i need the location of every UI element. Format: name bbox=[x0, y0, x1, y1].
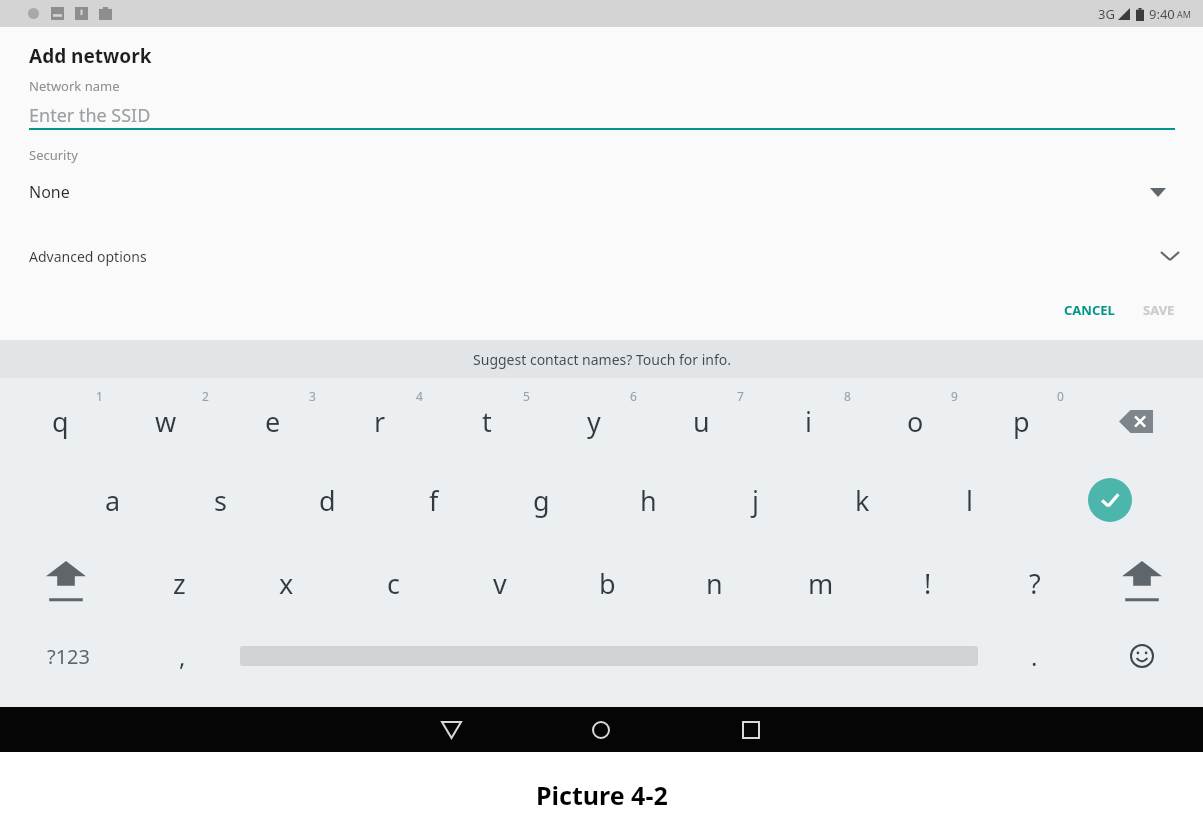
button[interactable]: Back bbox=[421, 707, 481, 752]
button[interactable]: SAVE bbox=[1129, 293, 1189, 327]
staticText: ! bbox=[924, 565, 932, 602]
button[interactable]: Emoji bbox=[1094, 624, 1190, 688]
staticText: None bbox=[29, 181, 70, 203]
staticText: ?123 bbox=[47, 643, 90, 670]
button[interactable]: s bbox=[172, 464, 268, 536]
staticText: k bbox=[855, 482, 870, 519]
staticText: ? bbox=[1029, 565, 1041, 602]
button[interactable]: c bbox=[345, 546, 441, 620]
button[interactable]: v bbox=[452, 546, 548, 620]
button[interactable]: z bbox=[131, 546, 227, 620]
button[interactable]: Recent apps bbox=[721, 707, 781, 752]
button[interactable]: Enter bbox=[1062, 464, 1158, 536]
button[interactable]: Backspace bbox=[1088, 384, 1184, 458]
staticText: Network name bbox=[29, 77, 120, 95]
staticText: 9 bbox=[951, 388, 958, 404]
staticText: j bbox=[752, 482, 759, 519]
staticText: Enter the SSID bbox=[29, 103, 151, 128]
button[interactable]: u bbox=[653, 384, 749, 458]
staticText: l bbox=[966, 482, 973, 519]
button[interactable]: CANCEL bbox=[1050, 293, 1129, 327]
staticText: r bbox=[374, 403, 386, 440]
staticText: Suggest contact names? Touch for info. bbox=[473, 350, 731, 369]
staticText: Security bbox=[29, 146, 78, 164]
button[interactable]: p bbox=[973, 384, 1069, 458]
staticText: e bbox=[265, 403, 281, 440]
staticText: u bbox=[693, 403, 710, 440]
button[interactable]: h bbox=[600, 464, 696, 536]
button[interactable]: o bbox=[867, 384, 963, 458]
staticText: i bbox=[805, 403, 812, 440]
staticText: n bbox=[706, 565, 723, 602]
button[interactable]: f bbox=[386, 464, 482, 536]
staticText: 8 bbox=[844, 388, 851, 404]
staticText: 6 bbox=[630, 388, 637, 404]
staticText: t bbox=[482, 403, 492, 440]
button[interactable]: k bbox=[814, 464, 910, 536]
staticText: 4 bbox=[416, 388, 423, 404]
staticText: 1 bbox=[96, 388, 103, 404]
button[interactable]: ?123 bbox=[20, 624, 116, 688]
button[interactable]: a bbox=[65, 464, 161, 536]
staticText: 2 bbox=[202, 388, 209, 404]
staticText: 5 bbox=[523, 388, 530, 404]
button[interactable]: b bbox=[559, 546, 655, 620]
staticText: 3G bbox=[1098, 5, 1115, 23]
button[interactable]: . bbox=[986, 624, 1082, 688]
staticText: o bbox=[907, 403, 924, 440]
staticText: AM bbox=[1177, 8, 1191, 20]
staticText: c bbox=[387, 565, 400, 602]
button[interactable]: y bbox=[546, 384, 642, 458]
staticText: s bbox=[214, 482, 227, 519]
button[interactable]: , bbox=[134, 624, 230, 688]
staticText: Add network bbox=[29, 43, 152, 69]
button[interactable]: ! bbox=[880, 546, 976, 620]
button[interactable]: j bbox=[707, 464, 803, 536]
staticText: f bbox=[429, 482, 439, 519]
button[interactable]: None bbox=[0, 171, 1203, 213]
button[interactable]: q bbox=[12, 384, 108, 458]
staticText: . bbox=[1031, 640, 1038, 673]
staticText: q bbox=[52, 403, 69, 440]
button[interactable]: l bbox=[921, 464, 1017, 536]
staticText: h bbox=[640, 482, 657, 519]
button[interactable]: e bbox=[225, 384, 321, 458]
staticText: SAVE bbox=[1143, 301, 1175, 319]
staticText: d bbox=[319, 482, 336, 519]
button[interactable]: Suggest contact names? Touch for info. bbox=[0, 340, 1203, 378]
staticText: a bbox=[105, 482, 121, 519]
staticText: x bbox=[279, 565, 294, 602]
button[interactable]: Shift bbox=[18, 546, 114, 620]
staticText: 7 bbox=[737, 388, 744, 404]
staticText: Picture 4-2 bbox=[536, 778, 668, 812]
staticText: g bbox=[533, 482, 550, 519]
button[interactable]: t bbox=[439, 384, 535, 458]
staticText: b bbox=[599, 565, 616, 602]
button[interactable]: x bbox=[238, 546, 334, 620]
staticText: p bbox=[1013, 403, 1030, 440]
button[interactable]: Space bbox=[240, 624, 978, 688]
button[interactable]: i bbox=[760, 384, 856, 458]
staticText: 9:40 bbox=[1149, 5, 1175, 23]
button[interactable]: ? bbox=[987, 546, 1083, 620]
staticText: m bbox=[808, 565, 834, 602]
staticText: y bbox=[587, 403, 601, 440]
staticText: , bbox=[179, 640, 186, 673]
button[interactable]: r bbox=[332, 384, 428, 458]
staticText: 0 bbox=[1057, 388, 1064, 404]
button[interactable]: g bbox=[493, 464, 589, 536]
staticText: v bbox=[493, 565, 507, 602]
staticText: w bbox=[155, 403, 177, 440]
button[interactable]: Advanced options bbox=[0, 233, 1203, 279]
button[interactable]: n bbox=[666, 546, 762, 620]
button[interactable]: Home bbox=[571, 707, 631, 752]
staticText: z bbox=[173, 565, 186, 602]
staticText: Advanced options bbox=[29, 247, 147, 266]
staticText: 3 bbox=[309, 388, 316, 404]
button[interactable]: w bbox=[118, 384, 214, 458]
button[interactable]: Shift bbox=[1094, 546, 1190, 620]
staticText: CANCEL bbox=[1064, 301, 1115, 319]
button[interactable]: m bbox=[773, 546, 869, 620]
button[interactable]: d bbox=[279, 464, 375, 536]
